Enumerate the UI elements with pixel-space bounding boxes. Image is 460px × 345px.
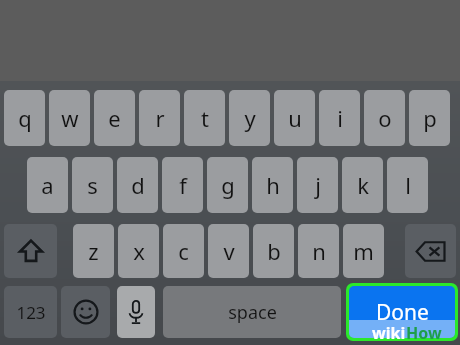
button[interactable]: b xyxy=(253,224,294,278)
staticText: q xyxy=(18,103,32,133)
button[interactable]: 123 xyxy=(4,286,57,338)
staticText: l xyxy=(405,170,411,200)
button[interactable]: v xyxy=(208,224,249,278)
staticText: x xyxy=(133,236,145,266)
button[interactable]: h xyxy=(252,157,293,213)
staticText: p xyxy=(423,103,437,133)
staticText: n xyxy=(312,236,326,266)
button[interactable]: c xyxy=(163,224,204,278)
staticText: j xyxy=(315,170,321,200)
staticText: w xyxy=(61,103,79,133)
button[interactable]: i xyxy=(319,90,360,146)
button[interactable]: z xyxy=(73,224,114,278)
staticText: i xyxy=(337,103,343,133)
staticText: Done xyxy=(376,298,429,327)
staticText: b xyxy=(267,236,281,266)
button[interactable]: g xyxy=(207,157,248,213)
staticText: c xyxy=(178,236,189,266)
staticText: d xyxy=(131,170,145,200)
button[interactable]: w xyxy=(49,90,90,146)
staticText: How xyxy=(406,322,442,344)
staticText: t xyxy=(201,103,209,133)
button[interactable]: o xyxy=(364,90,405,146)
button[interactable]: x xyxy=(118,224,159,278)
button[interactable]: e xyxy=(94,90,135,146)
staticText: y xyxy=(244,103,256,133)
button[interactable]: p xyxy=(409,90,450,146)
button[interactable]: t xyxy=(184,90,225,146)
button[interactable]: u xyxy=(274,90,315,146)
button[interactable]: space xyxy=(163,286,341,338)
staticText: k xyxy=(357,170,369,200)
staticText: g xyxy=(221,170,235,200)
staticText: f xyxy=(179,170,187,200)
button[interactable]: m xyxy=(343,224,384,278)
button[interactable]: Dictate xyxy=(117,286,155,338)
staticText: s xyxy=(87,170,98,200)
button[interactable]: Emoji xyxy=(61,286,110,338)
staticText: m xyxy=(353,236,374,266)
staticText: z xyxy=(88,236,99,266)
button[interactable]: j xyxy=(297,157,338,213)
button[interactable]: l xyxy=(387,157,428,213)
staticText: space xyxy=(228,300,277,325)
staticText: v xyxy=(223,236,235,266)
staticText: a xyxy=(41,170,54,200)
button[interactable]: n xyxy=(298,224,339,278)
button[interactable]: r xyxy=(139,90,180,146)
button[interactable]: a xyxy=(27,157,68,213)
staticText: r xyxy=(155,103,165,133)
button[interactable]: q xyxy=(4,90,45,146)
button[interactable]: Shift xyxy=(4,224,57,278)
staticText: u xyxy=(288,103,302,133)
button[interactable]: s xyxy=(72,157,113,213)
staticText: wiki xyxy=(372,322,406,344)
staticText: o xyxy=(378,103,392,133)
button[interactable]: f xyxy=(162,157,203,213)
button[interactable]: y xyxy=(229,90,270,146)
button[interactable]: Done xyxy=(349,286,455,338)
button[interactable]: Backspace xyxy=(405,224,456,278)
staticText: 123 xyxy=(16,301,46,324)
staticText: e xyxy=(108,103,121,133)
button[interactable]: d xyxy=(117,157,158,213)
button[interactable]: k xyxy=(342,157,383,213)
staticText: h xyxy=(266,170,280,200)
